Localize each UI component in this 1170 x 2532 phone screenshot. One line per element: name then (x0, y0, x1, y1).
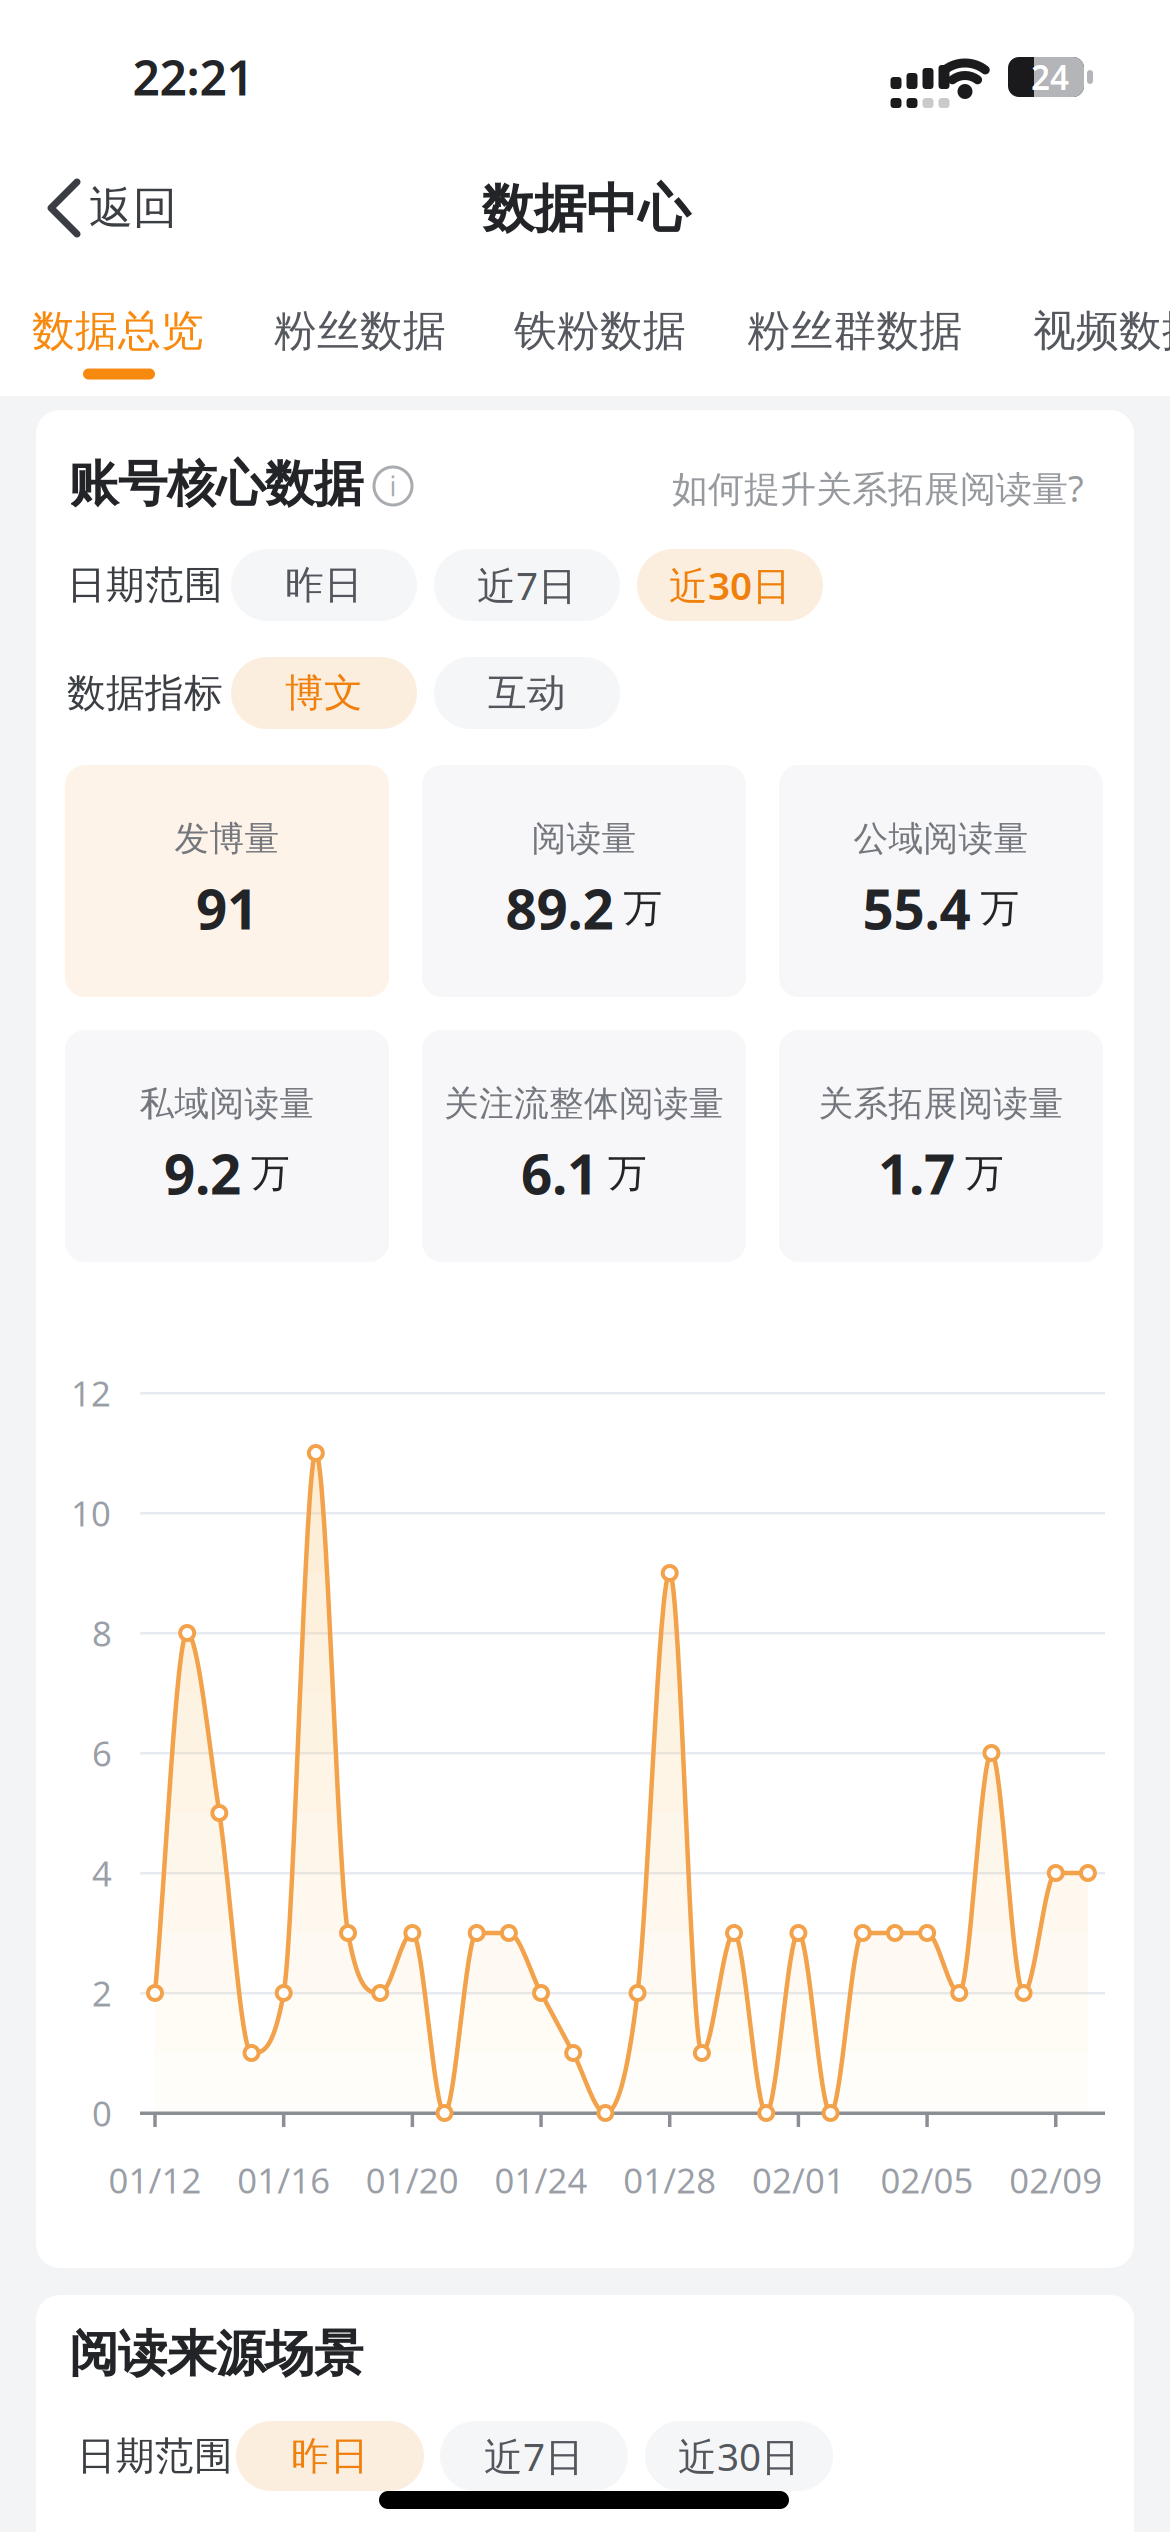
button[interactable]: 近7日 (434, 549, 620, 621)
button[interactable]: 私域阅读量 (65, 1030, 389, 1262)
staticText: 近7日 (484, 2430, 584, 2482)
staticText: 01/28 (623, 2157, 716, 2203)
staticText: 发博量 (174, 817, 279, 860)
button[interactable]: 铁粉数据 (514, 305, 686, 357)
staticText: 万 (251, 1149, 290, 1197)
staticText: 6 (92, 1730, 112, 1776)
staticText: 0 (92, 2090, 112, 2136)
staticText: 24 (1031, 55, 1069, 99)
staticText: 02/09 (1009, 2157, 1102, 2203)
staticText: 91 (196, 872, 258, 945)
staticText: 8 (92, 1610, 112, 1656)
staticText: 万 (965, 1149, 1004, 1197)
staticText: 万 (980, 884, 1019, 932)
staticText: 粉丝数据 (274, 305, 446, 357)
staticText: 昨日 (285, 561, 363, 609)
staticText: 返回 (89, 181, 177, 235)
button[interactable]: 视频数据 (1033, 305, 1170, 357)
staticText: 日期范围 (77, 2432, 233, 2480)
button[interactable]: 互动 (434, 657, 620, 729)
staticText: 01/16 (237, 2157, 330, 2203)
button[interactable]: 近7日 (440, 2421, 628, 2491)
staticText: 日期范围 (67, 561, 223, 609)
staticText: 数据指标 (67, 669, 223, 717)
staticText: 22:21 (132, 45, 253, 109)
staticText: 02/05 (881, 2157, 974, 2203)
staticText: 4 (92, 1850, 112, 1896)
staticText: 55.4 (862, 872, 970, 945)
button[interactable]: 近30日 (637, 549, 823, 621)
button[interactable]: 粉丝群数据 (747, 305, 962, 357)
staticText: 近7日 (477, 559, 577, 611)
staticText: 互动 (488, 669, 566, 717)
staticText: 阅读来源场景 (69, 2324, 363, 2384)
staticText: 01/24 (494, 2157, 587, 2203)
button[interactable]: 返回 (47, 180, 177, 236)
staticText: 粉丝群数据 (747, 305, 962, 357)
staticText: 阅读量 (531, 817, 636, 860)
staticText: 昨日 (291, 2432, 369, 2480)
staticText: 9.2 (164, 1137, 241, 1210)
button[interactable]: 博文 (231, 657, 417, 729)
staticText: 数据中心 (482, 177, 690, 241)
staticText: 私域阅读量 (139, 1082, 314, 1125)
staticText: 关系拓展阅读量 (818, 1082, 1063, 1125)
staticText: 89.2 (505, 872, 613, 945)
staticText: 公域阅读量 (853, 817, 1028, 860)
staticText: 2 (92, 1970, 112, 2016)
staticText: 近30日 (678, 2430, 800, 2482)
staticText: 关注流整体阅读量 (444, 1082, 724, 1125)
staticText: 铁粉数据 (514, 305, 686, 357)
button[interactable]: 关注流整体阅读量 (422, 1030, 746, 1262)
staticText: 万 (608, 1149, 647, 1197)
staticText: 视频数据 (1033, 305, 1170, 357)
button[interactable]: 关系拓展阅读量 (779, 1030, 1103, 1262)
button[interactable]: 近30日 (645, 2421, 833, 2491)
staticText: 01/12 (108, 2157, 201, 2203)
button[interactable]: 数据总览 (32, 305, 204, 357)
staticText: 博文 (285, 669, 363, 717)
staticText: 6.1 (521, 1137, 598, 1210)
staticText: 近30日 (669, 559, 791, 611)
staticText: 如何提升关系拓展阅读量? (672, 464, 1084, 512)
button[interactable]: 粉丝数据 (274, 305, 446, 357)
staticText: 12 (71, 1370, 111, 1416)
button[interactable]: 昨日 (231, 549, 417, 621)
button[interactable]: 昨日 (236, 2421, 424, 2491)
staticText: 1.7 (878, 1137, 955, 1210)
staticText: i (389, 468, 396, 504)
staticText: 10 (71, 1490, 111, 1536)
button[interactable]: 说明 (371, 464, 415, 508)
button[interactable]: 公域阅读量 (779, 765, 1103, 997)
button[interactable]: 阅读量 (422, 765, 746, 997)
staticText: 01/20 (366, 2157, 459, 2203)
staticText: 数据总览 (32, 305, 204, 357)
staticText: 02/01 (752, 2157, 845, 2203)
button[interactable]: 发博量 (65, 765, 389, 997)
staticText: 账号核心数据 (69, 454, 363, 514)
button[interactable]: 如何提升关系拓展阅读量? (672, 464, 1084, 512)
staticText: 万 (623, 884, 662, 932)
